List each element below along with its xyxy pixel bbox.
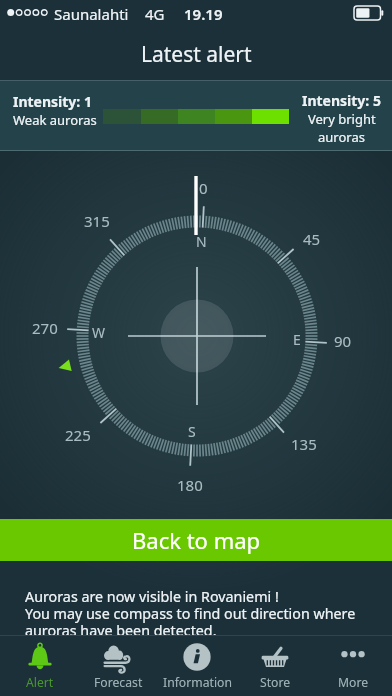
staticText: 4G (145, 4, 165, 24)
staticText: Latest alert (141, 40, 252, 69)
button[interactable]: Store (236, 636, 314, 696)
staticText: 180 (177, 475, 203, 495)
staticText: Very bright (308, 110, 376, 128)
staticText: N (196, 232, 207, 251)
button[interactable]: Information (158, 636, 236, 696)
button[interactable]: Alert (0, 636, 79, 696)
staticText: Saunalahti (54, 4, 129, 24)
staticText: 270 (32, 318, 58, 338)
staticText: auroras (318, 128, 365, 146)
staticText: Forecast (94, 674, 143, 691)
staticText: Information (163, 674, 232, 691)
button[interactable]: Back to map (0, 519, 392, 561)
staticText: 0 (199, 178, 208, 198)
staticText: Weak auroras (13, 111, 97, 129)
staticText: 315 (84, 211, 110, 231)
staticText: Store (260, 674, 291, 691)
staticText: Auroras are now visible in Rovaniemi ! Y… (25, 587, 356, 641)
staticText: Intensity: 1 (13, 92, 92, 111)
staticText: 19.19 (184, 4, 223, 24)
staticText: Back to map (132, 525, 261, 555)
staticText: 90 (334, 331, 352, 351)
staticText: Intensity: 5 (302, 91, 381, 110)
button[interactable]: Forecast (79, 636, 158, 696)
staticText: E (293, 330, 301, 349)
staticText: More (338, 674, 369, 691)
staticText: 135 (291, 434, 317, 454)
button[interactable]: More (314, 636, 392, 696)
staticText: Alert (26, 674, 54, 691)
staticText: 45 (303, 229, 321, 249)
staticText: 225 (65, 425, 91, 445)
staticText: W (92, 323, 106, 342)
staticText: S (188, 422, 196, 441)
